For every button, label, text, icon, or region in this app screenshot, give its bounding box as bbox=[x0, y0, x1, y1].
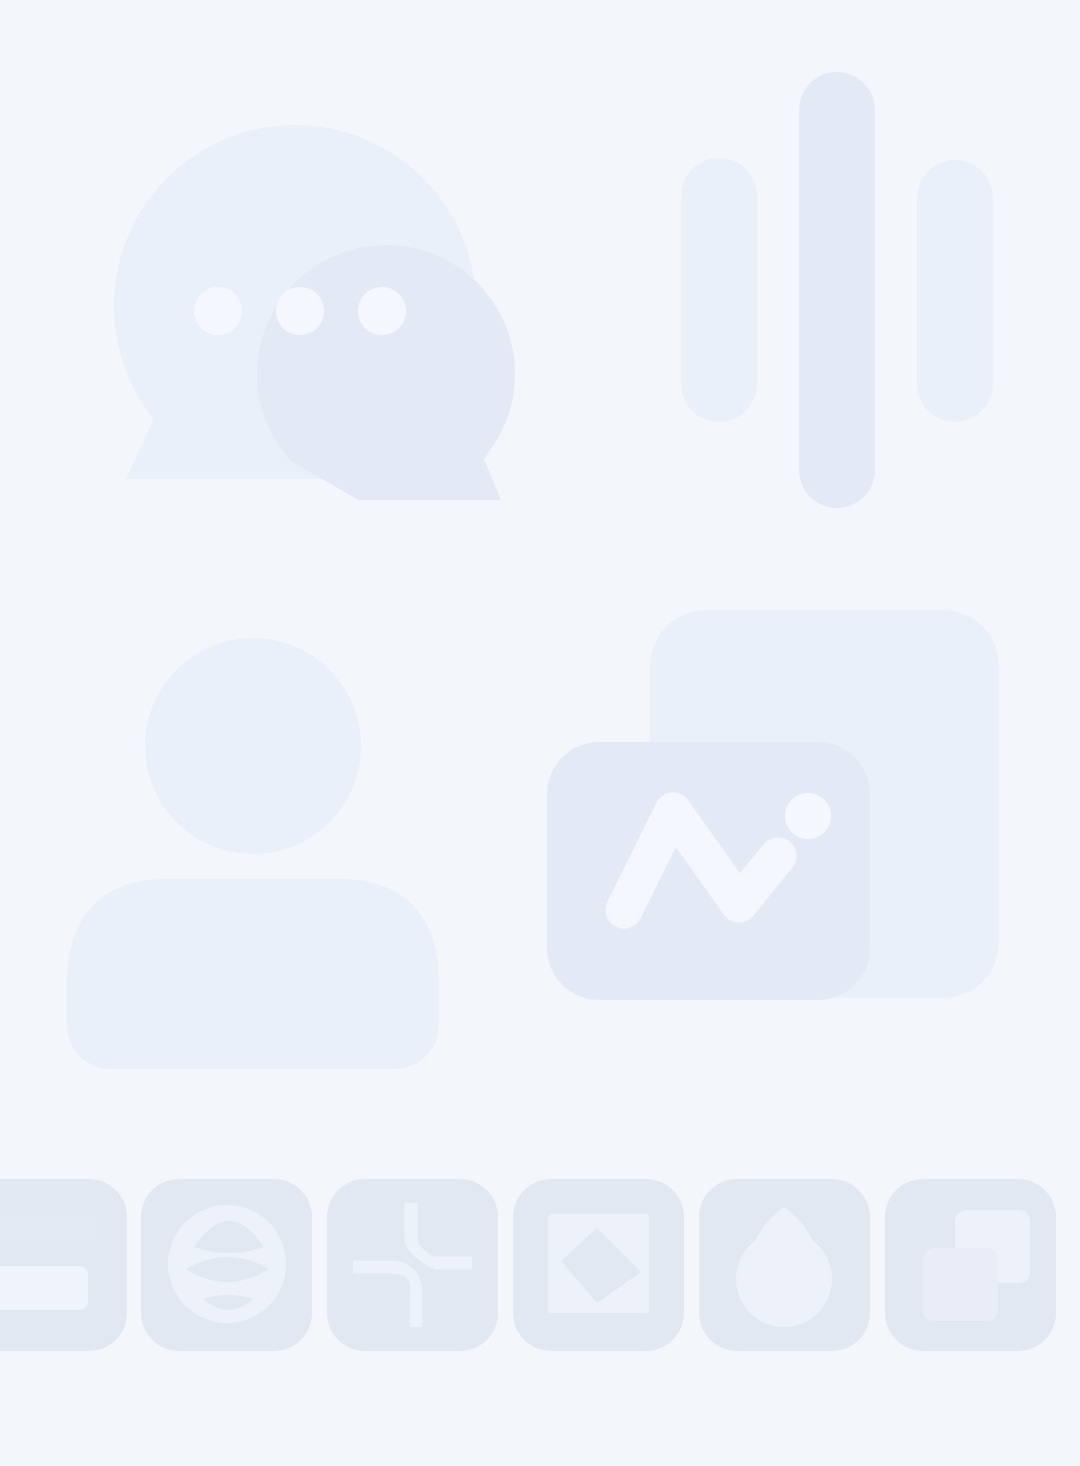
button[interactable]: Wallet bbox=[0, 1179, 127, 1351]
button[interactable]: Transit bbox=[327, 1179, 498, 1351]
button[interactable]: Photos bbox=[513, 1179, 684, 1351]
button[interactable]: Files bbox=[885, 1179, 1056, 1351]
button[interactable]: Weather bbox=[699, 1179, 870, 1351]
button[interactable]: Browser bbox=[141, 1179, 312, 1351]
